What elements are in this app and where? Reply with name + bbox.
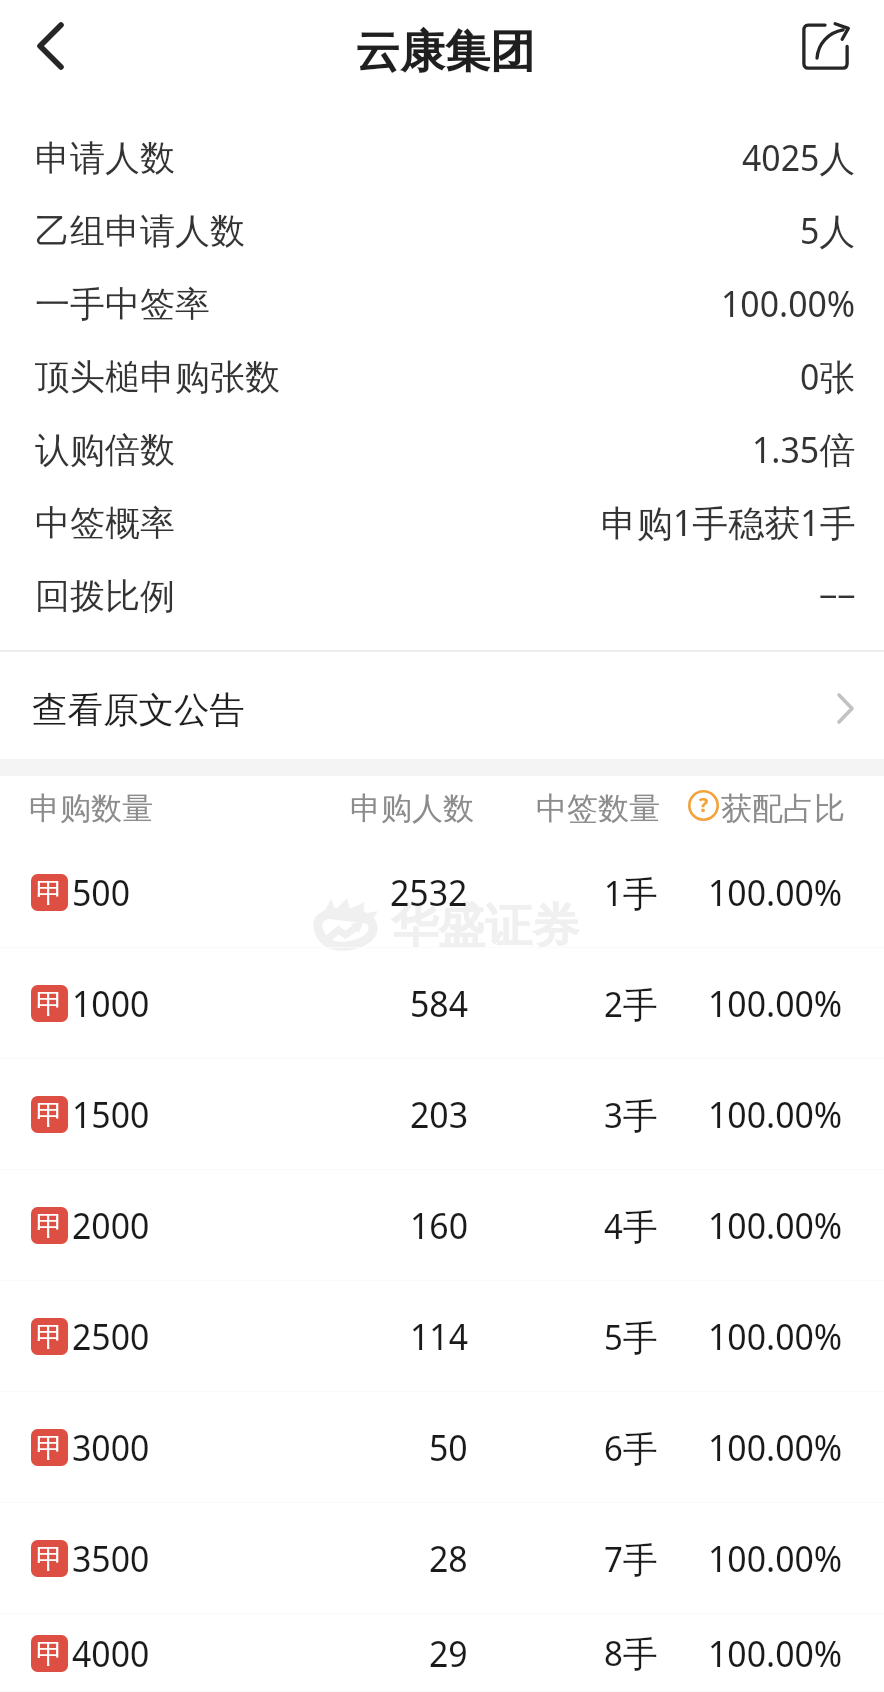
staticText: 50: [429, 1423, 468, 1472]
staticText: 100.00%: [708, 1534, 843, 1583]
button[interactable]: 甲: [0, 1614, 884, 1692]
staticText: 1500: [72, 1090, 150, 1139]
staticText: 甲: [36, 1209, 63, 1243]
button[interactable]: Share: [783, 4, 867, 88]
button[interactable]: 甲: [0, 1392, 884, 1503]
staticText: 5人: [800, 206, 856, 255]
staticText: 100.00%: [708, 1201, 843, 1250]
staticText: 100.00%: [708, 1312, 843, 1361]
staticText: 3手: [604, 1091, 658, 1139]
staticText: 3500: [72, 1534, 150, 1583]
staticText: ?: [699, 791, 709, 818]
staticText: 获配占比: [721, 789, 845, 828]
staticText: 一手中签率: [35, 282, 210, 326]
staticText: 0张: [800, 352, 856, 401]
button[interactable]: 查看原文公告: [0, 652, 884, 759]
staticText: 甲: [36, 987, 63, 1021]
staticText: 云康集团: [355, 24, 535, 81]
staticText: 甲: [36, 876, 63, 910]
staticText: 7手: [604, 1535, 658, 1583]
staticText: 100.00%: [721, 279, 856, 328]
staticText: 1000: [72, 979, 150, 1028]
staticText: 认购倍数: [35, 428, 175, 472]
staticText: 申购数量: [29, 789, 153, 828]
staticText: 100.00%: [708, 868, 843, 917]
staticText: 2000: [72, 1201, 150, 1250]
staticText: 甲: [36, 1320, 63, 1354]
staticText: 甲: [36, 1431, 63, 1465]
staticText: 2532: [390, 868, 468, 917]
staticText: 4000: [72, 1629, 150, 1678]
staticText: 申购1手稳获1手: [601, 498, 856, 547]
button[interactable]: 甲: [0, 837, 884, 948]
staticText: 8手: [604, 1629, 658, 1677]
staticText: 160: [410, 1201, 468, 1250]
staticText: 申购人数: [350, 789, 474, 828]
staticText: 顶头槌申购张数: [35, 355, 280, 399]
button[interactable]: 甲: [0, 1059, 884, 1170]
staticText: 100.00%: [708, 1629, 843, 1678]
staticText: 中签概率: [35, 501, 175, 545]
staticText: 2500: [72, 1312, 150, 1361]
staticText: 584: [410, 979, 468, 1028]
staticText: 28: [429, 1534, 468, 1583]
staticText: ‒‒: [819, 573, 856, 619]
button[interactable]: 甲: [0, 1170, 884, 1281]
staticText: 114: [410, 1312, 468, 1361]
staticText: 申请人数: [35, 136, 175, 180]
staticText: 乙组申请人数: [35, 209, 245, 253]
staticText: 100.00%: [708, 1090, 843, 1139]
staticText: 100.00%: [708, 979, 843, 1028]
staticText: 4手: [604, 1202, 658, 1250]
button[interactable]: 甲: [0, 1281, 884, 1392]
staticText: 中签数量: [536, 789, 660, 828]
staticText: 500: [72, 868, 130, 917]
staticText: 5手: [604, 1313, 658, 1361]
staticText: 4025人: [742, 133, 856, 182]
staticText: 甲: [36, 1542, 63, 1576]
staticText: 29: [429, 1629, 468, 1678]
staticText: 203: [410, 1090, 468, 1139]
staticText: 2手: [604, 980, 658, 1028]
staticText: 3000: [72, 1423, 150, 1472]
staticText: 100.00%: [708, 1423, 843, 1472]
staticText: 1.35倍: [752, 425, 856, 474]
button[interactable]: Back: [8, 4, 92, 88]
button[interactable]: 甲: [0, 1503, 884, 1614]
staticText: 查看原文公告: [32, 688, 245, 733]
staticText: 甲: [36, 1098, 63, 1132]
staticText: 1手: [604, 869, 658, 917]
staticText: 回拨比例: [35, 574, 175, 618]
staticText: 6手: [604, 1424, 658, 1472]
staticText: 华盛证券: [391, 897, 579, 956]
staticText: 甲: [36, 1637, 63, 1671]
button[interactable]: 甲: [0, 948, 884, 1059]
